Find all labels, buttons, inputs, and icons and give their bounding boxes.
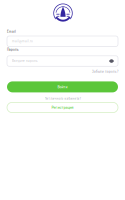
staticText: Войти	[57, 85, 67, 89]
staticText: mail@mail.ru	[12, 39, 33, 43]
staticText: Введите пароль	[12, 59, 38, 63]
staticText: Email	[7, 30, 16, 33]
button[interactable]: Регистрация	[7, 102, 118, 113]
staticText: Регистрация	[51, 105, 73, 110]
staticText: Пароль	[7, 48, 19, 51]
staticText: Нет личного кабинета?	[44, 97, 80, 100]
button[interactable]: Войти	[7, 81, 118, 92]
button[interactable]: Забыли пароль?	[92, 70, 118, 73]
staticText: Забыли пароль?	[92, 70, 118, 73]
